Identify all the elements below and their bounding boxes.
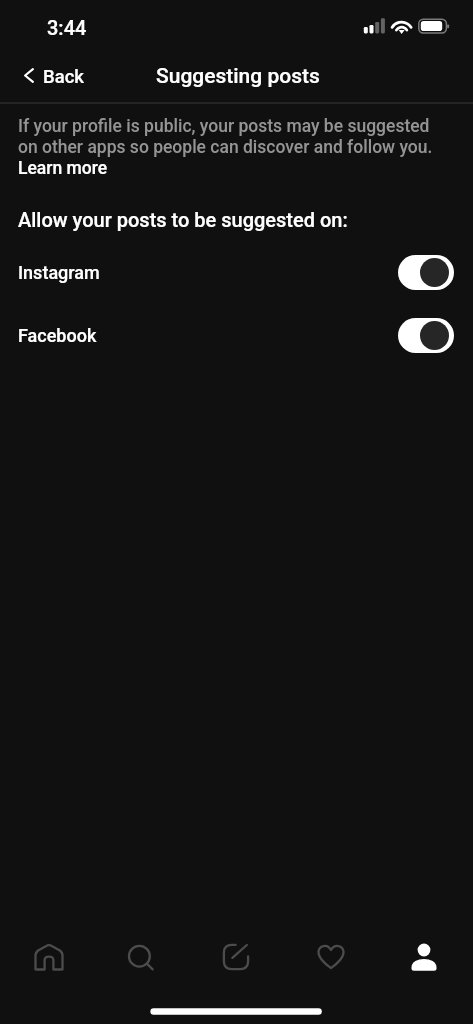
button[interactable]: Learn more <box>18 158 108 179</box>
button[interactable]: Home <box>0 925 94 989</box>
button[interactable]: Back <box>0 64 96 86</box>
button[interactable]: Toggle <box>398 255 454 290</box>
staticText: Learn more <box>18 158 108 179</box>
button[interactable]: Toggle <box>398 318 454 353</box>
button[interactable]: Search <box>94 925 188 989</box>
staticText: Facebook <box>18 325 97 346</box>
button[interactable]: Profile <box>378 925 473 989</box>
staticText: If your profile is public, your posts ma… <box>18 116 443 158</box>
button[interactable]: Create <box>188 925 283 989</box>
button[interactable]: Activity <box>283 925 378 989</box>
staticText: Instagram <box>18 262 100 283</box>
button[interactable]: Facebook <box>0 304 473 367</box>
staticText: Suggesting posts <box>156 64 320 89</box>
staticText: 3:44 <box>47 16 87 39</box>
button[interactable]: Instagram <box>0 241 473 304</box>
staticText: Back <box>43 66 84 88</box>
staticText: Allow your posts to be suggested on: <box>18 208 348 231</box>
